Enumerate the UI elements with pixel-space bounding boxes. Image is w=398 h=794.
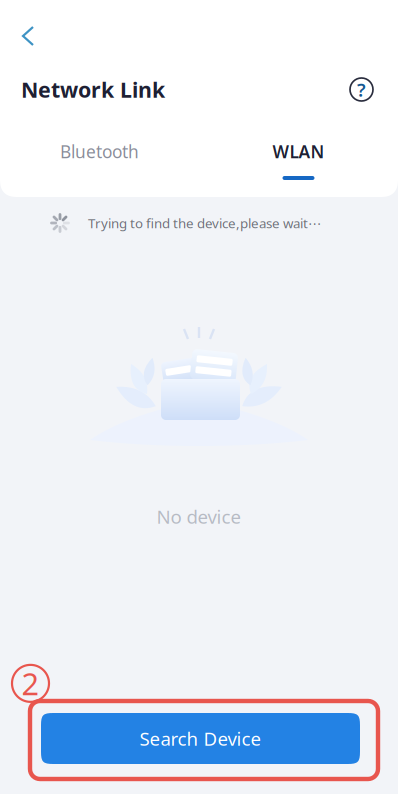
staticText: ?	[357, 77, 366, 102]
button[interactable]: Back	[0, 0, 52, 52]
button[interactable]: Help	[343, 71, 380, 108]
staticText: WLAN	[272, 140, 324, 163]
button[interactable]: Bluetooth	[0, 145, 199, 197]
staticText: Trying to find the device,please wait⋯	[88, 214, 321, 232]
staticText: 2	[21, 663, 39, 704]
staticText: Search Device	[139, 726, 261, 751]
staticText: No device	[156, 504, 241, 529]
button[interactable]: WLAN	[199, 145, 398, 197]
button[interactable]: Search Device	[41, 713, 360, 764]
staticText: Network Link	[21, 75, 165, 104]
staticText: Bluetooth	[60, 140, 139, 163]
